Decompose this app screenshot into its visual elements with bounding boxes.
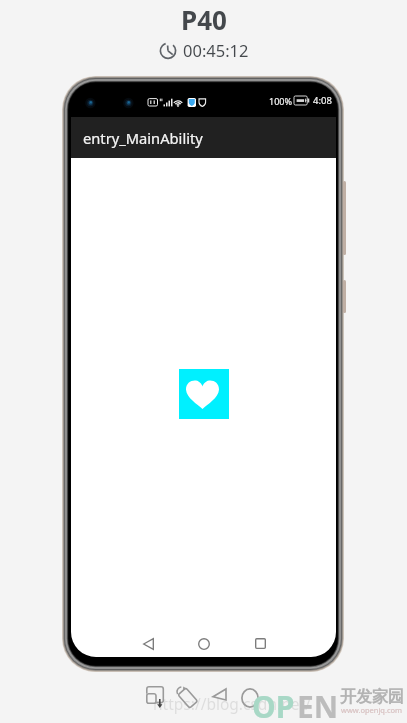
button[interactable]: Recents [232, 630, 288, 657]
button[interactable]: Home [176, 630, 232, 657]
staticText: EN [297, 686, 339, 723]
button[interactable]: Screenshot [144, 684, 168, 710]
staticText: entry_MainAbility [83, 128, 203, 148]
staticText: 00:45:12 [183, 39, 249, 61]
staticText: OP [252, 686, 295, 723]
button[interactable]: Home [239, 683, 261, 709]
staticText: P40 [181, 2, 227, 37]
button[interactable]: Rotate screen [176, 684, 198, 710]
button[interactable]: Back [120, 630, 176, 657]
button[interactable]: entry_MainAbility [71, 117, 336, 158]
staticText: 4:08 [313, 94, 332, 107]
staticText: https://blog.csdn.net/ [153, 693, 311, 714]
staticText: www.openjq.com [341, 705, 403, 715]
staticText: 100% [269, 95, 292, 107]
staticText: 开发家园 [340, 687, 404, 707]
button[interactable]: Back [209, 686, 231, 710]
button[interactable]: Favorite [179, 369, 229, 419]
